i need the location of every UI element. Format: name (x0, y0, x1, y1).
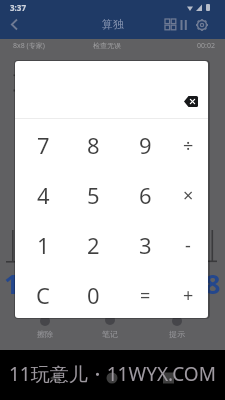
button[interactable] (162, 16, 179, 33)
button[interactable]: 笔记 (90, 328, 130, 340)
staticText: 1 (4, 265, 20, 298)
button[interactable]: 5 (70, 170, 116, 220)
staticText: 擦除 (37, 329, 53, 339)
staticText: 3 (139, 230, 152, 260)
button[interactable]: + (165, 270, 208, 318)
staticText: C (36, 280, 50, 310)
staticText: 8x8 (专家) (13, 41, 45, 51)
button[interactable]: - (165, 220, 208, 270)
staticText: + (183, 283, 194, 308)
button[interactable] (193, 16, 210, 33)
staticText: 检查无误 (93, 41, 121, 50)
staticText: 1 (37, 230, 50, 260)
button[interactable]: = (122, 270, 168, 318)
staticText: 4 (37, 180, 50, 210)
staticText: = (140, 283, 151, 308)
button[interactable]: 0 (70, 270, 116, 318)
staticText: 6 (139, 180, 152, 210)
button[interactable] (176, 16, 191, 33)
button[interactable]: 3 (122, 220, 168, 270)
staticText: 0 (87, 280, 100, 310)
staticText: × (183, 183, 194, 208)
staticText: 7 (37, 130, 50, 160)
button[interactable]: ÷ (165, 120, 208, 170)
button[interactable]: 提示 (157, 328, 197, 340)
staticText: ÷ (183, 133, 194, 158)
staticText: - (185, 233, 191, 258)
staticText: 9 (139, 130, 152, 160)
button[interactable]: 9 (122, 120, 168, 170)
staticText: 笔记 (102, 329, 118, 339)
staticText: 8 (87, 130, 100, 160)
staticText: 2 (87, 230, 100, 260)
staticText: 00:02 (197, 41, 215, 51)
staticText: 11玩意儿・11WYX.COM (9, 361, 216, 387)
button[interactable]: × (165, 170, 208, 220)
staticText: 3:37 (10, 2, 26, 13)
button[interactable]: 1 (20, 220, 66, 270)
staticText: 算独 (102, 17, 124, 31)
button[interactable]: C (20, 270, 66, 318)
staticText: 提示 (169, 329, 185, 339)
button[interactable]: 7 (20, 120, 66, 170)
button[interactable]: 2 (70, 220, 116, 270)
button[interactable] (179, 90, 203, 112)
button[interactable]: 8 (70, 120, 116, 170)
button[interactable]: 4 (20, 170, 66, 220)
staticText: 8 (205, 265, 221, 298)
staticText: 5 (87, 180, 100, 210)
button[interactable]: 擦除 (25, 328, 65, 340)
button[interactable] (6, 16, 24, 34)
button[interactable]: 6 (122, 170, 168, 220)
